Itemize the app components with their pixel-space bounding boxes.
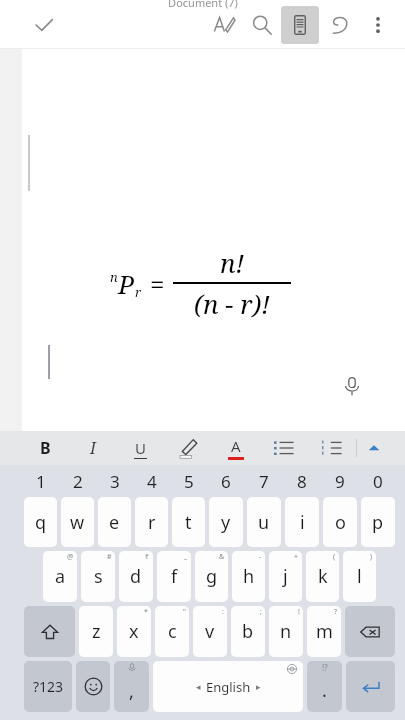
staticText: I xyxy=(90,437,96,459)
staticText: k xyxy=(318,564,328,589)
button[interactable]: _ xyxy=(157,551,191,602)
button[interactable]: Bulleted list xyxy=(260,431,308,465)
button[interactable]: Collapse toolbar xyxy=(357,431,391,465)
button[interactable]: ?123 xyxy=(24,661,72,712)
staticText: 7 xyxy=(259,470,269,493)
button[interactable]: ! xyxy=(269,606,303,657)
staticText: ▸ xyxy=(256,682,261,692)
staticText: a xyxy=(55,564,66,589)
staticText: U xyxy=(135,438,146,458)
button[interactable]: " xyxy=(155,606,189,657)
staticText: B xyxy=(40,437,51,459)
staticText: r xyxy=(135,283,142,301)
button[interactable]: t xyxy=(172,497,205,547)
staticText: Document (7) xyxy=(168,0,238,10)
button[interactable]: Backspace xyxy=(345,606,395,657)
button[interactable]: More options xyxy=(359,6,397,44)
staticText: v xyxy=(205,619,215,644)
button[interactable]: 2 xyxy=(59,467,96,495)
staticText: i xyxy=(300,510,305,535)
staticText: b xyxy=(242,619,254,644)
button[interactable]: 1 xyxy=(22,467,59,495)
button[interactable]: Shift xyxy=(24,606,75,657)
staticText: 2 xyxy=(73,470,83,493)
staticText: & xyxy=(219,552,225,562)
staticText: 4 xyxy=(147,470,157,493)
staticText: + xyxy=(294,552,299,562)
staticText: q xyxy=(35,510,47,535)
staticText: n! xyxy=(220,245,245,280)
staticText: u xyxy=(258,510,270,535)
staticText: @ xyxy=(67,552,74,562)
staticText: g xyxy=(206,564,218,589)
staticText: ( xyxy=(333,552,336,562)
button[interactable]: 6 xyxy=(207,467,245,495)
staticText: ! xyxy=(298,607,300,617)
staticText: ◂ xyxy=(196,682,201,692)
button[interactable]: q xyxy=(24,497,57,547)
button[interactable]: z xyxy=(79,606,113,657)
staticText: . xyxy=(322,678,327,703)
button[interactable]: Numbered list xyxy=(308,431,356,465)
button[interactable]: & xyxy=(195,551,228,602)
button[interactable]: Space, English xyxy=(153,661,303,712)
staticText: d xyxy=(130,564,142,589)
button[interactable]: 8 xyxy=(283,467,321,495)
button[interactable]: 0 xyxy=(359,467,397,495)
staticText: z xyxy=(92,619,101,644)
button[interactable]: Voice input xyxy=(329,363,375,409)
button[interactable]: e xyxy=(98,497,131,547)
button[interactable]: Draw xyxy=(205,6,243,44)
button[interactable]: o xyxy=(323,497,357,547)
button[interactable]: 9 xyxy=(321,467,359,495)
staticText: 0 xyxy=(373,470,383,493)
button[interactable]: p xyxy=(361,497,395,547)
button[interactable]: u xyxy=(247,497,281,547)
staticText: ?123 xyxy=(33,677,64,696)
button[interactable]: y xyxy=(209,497,243,547)
button[interactable]: w xyxy=(61,497,94,547)
button[interactable]: @ xyxy=(43,551,77,602)
button[interactable]: r xyxy=(135,497,168,547)
button[interactable]: * xyxy=(117,606,151,657)
staticText: ; xyxy=(260,607,262,617)
staticText: n xyxy=(280,619,292,644)
button[interactable]: Highlight xyxy=(164,431,212,465)
button[interactable]: 4 xyxy=(133,467,170,495)
staticText: ? xyxy=(334,607,338,617)
button[interactable]: Enter xyxy=(346,661,395,712)
button[interactable]: Bold xyxy=(22,431,69,465)
button[interactable]: Text color xyxy=(212,431,260,465)
button[interactable]: # xyxy=(81,551,115,602)
button[interactable]: i xyxy=(285,497,319,547)
staticText: w xyxy=(70,510,85,535)
staticText: # xyxy=(107,552,112,562)
staticText: c xyxy=(168,619,177,644)
staticText: ₹ xyxy=(145,552,150,562)
button[interactable]: Undo xyxy=(321,6,359,44)
button[interactable]: Emoji xyxy=(76,661,110,712)
button[interactable]: Period xyxy=(307,661,342,712)
button[interactable]: View mode xyxy=(281,6,319,44)
button[interactable]: 3 xyxy=(96,467,133,495)
staticText: = xyxy=(150,266,165,301)
button[interactable]: Underline xyxy=(116,431,164,465)
button[interactable]: + xyxy=(269,551,302,602)
button[interactable]: Italic xyxy=(69,431,116,465)
staticText: - xyxy=(259,552,262,562)
button[interactable]: - xyxy=(232,551,265,602)
button[interactable]: 5 xyxy=(170,467,207,495)
staticText: y xyxy=(221,510,231,535)
button[interactable]: ) xyxy=(343,551,376,602)
button[interactable]: 7 xyxy=(245,467,283,495)
button[interactable]: ? xyxy=(307,606,341,657)
staticText: 5 xyxy=(184,470,194,493)
button[interactable]: ₹ xyxy=(119,551,153,602)
button[interactable]: ; xyxy=(231,606,265,657)
staticText: _ xyxy=(184,552,188,562)
button[interactable]: Comma, voice input xyxy=(114,661,149,712)
button[interactable]: Search xyxy=(243,6,281,44)
button[interactable]: : xyxy=(193,606,227,657)
button[interactable]: Done xyxy=(22,3,66,47)
button[interactable]: ( xyxy=(306,551,339,602)
